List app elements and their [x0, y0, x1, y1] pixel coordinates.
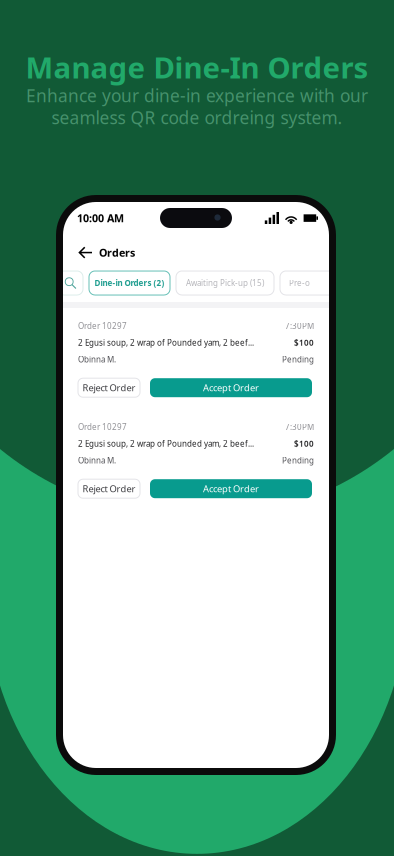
- staticText: Pre-o: [289, 278, 310, 288]
- button[interactable]: Search: [58, 271, 83, 295]
- button[interactable]: Accept Order: [150, 378, 312, 397]
- staticText: seamless QR code ordreing system.: [51, 106, 342, 129]
- staticText: 7:30PM: [285, 321, 314, 331]
- staticText: 7:30PM: [285, 422, 314, 432]
- staticText: 10:00 AM: [77, 211, 124, 225]
- staticText: Dine-in Orders (2): [94, 278, 164, 288]
- staticText: Accept Order: [203, 381, 259, 394]
- staticText: Accept Order: [203, 482, 259, 495]
- staticText: Pending: [282, 455, 314, 466]
- staticText: Obinna M.: [78, 455, 116, 466]
- button[interactable]: Back: [78, 246, 92, 258]
- staticText: Order 10297: [78, 321, 127, 331]
- staticText: $100: [294, 438, 314, 449]
- button[interactable]: Reject Order: [78, 378, 140, 397]
- staticText: 2 Egusi soup, 2 wrap of Pounded yam, 2 b…: [78, 337, 254, 348]
- staticText: 2 Egusi soup, 2 wrap of Pounded yam, 2 b…: [78, 438, 254, 449]
- button[interactable]: Reject Order: [78, 479, 140, 498]
- staticText: Manage Dine-In Orders: [25, 47, 368, 86]
- button[interactable]: Pre-o: [280, 271, 343, 295]
- staticText: Awaiting Pick-up (15): [186, 278, 264, 288]
- button[interactable]: Awaiting Pick-up (15): [176, 271, 274, 295]
- button[interactable]: Dine-in Orders (2): [89, 271, 170, 295]
- staticText: Enhance your dine-in experience with our: [26, 84, 368, 107]
- button[interactable]: Accept Order: [150, 479, 312, 498]
- staticText: Reject Order: [82, 381, 135, 394]
- staticText: Order 10297: [78, 422, 127, 432]
- staticText: Pending: [282, 354, 314, 365]
- staticText: $100: [294, 337, 314, 348]
- staticText: Obinna M.: [78, 354, 116, 365]
- staticText: Reject Order: [82, 482, 135, 495]
- staticText: Orders: [99, 245, 135, 260]
